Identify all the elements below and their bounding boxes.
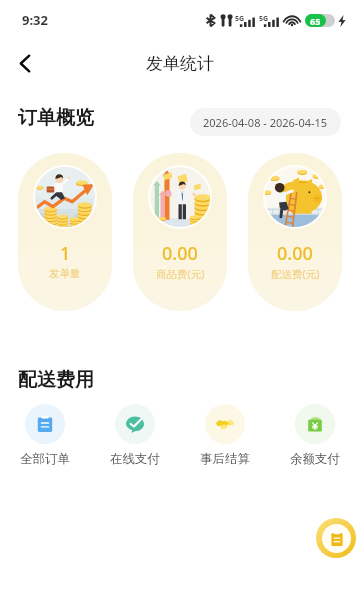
staticText: 余额支付 xyxy=(290,451,340,467)
staticText: 商品费(元) xyxy=(156,267,205,281)
button[interactable]: 余额支付 xyxy=(270,404,360,467)
button[interactable]: Back xyxy=(8,46,42,80)
button[interactable]: New order xyxy=(316,518,356,558)
button[interactable]: 2026-04-08 - 2026-04-15 xyxy=(190,108,341,136)
staticText: 0.00 xyxy=(162,241,198,266)
staticText: 订单概览 xyxy=(18,106,94,130)
staticText: 在线支付 xyxy=(110,451,160,467)
staticText: 1 xyxy=(60,241,71,266)
staticText: 0.00 xyxy=(277,241,313,266)
staticText: 5G xyxy=(259,14,269,24)
staticText: 配送费用 xyxy=(18,368,94,392)
staticText: 配送费(元) xyxy=(271,267,320,281)
staticText: 发单统计 xyxy=(146,53,214,74)
staticText: 5G xyxy=(235,14,245,24)
staticText: 2026-04-08 - 2026-04-15 xyxy=(203,115,328,130)
button[interactable]: 0.00 xyxy=(133,153,227,311)
staticText: 65 xyxy=(310,15,321,27)
button[interactable]: 1 xyxy=(18,153,112,311)
button[interactable]: 在线支付 xyxy=(90,404,180,467)
staticText: 全部订单 xyxy=(20,451,70,467)
staticText: 事后结算 xyxy=(200,451,250,467)
button[interactable]: 全部订单 xyxy=(0,404,90,467)
button[interactable]: 0.00 xyxy=(248,153,342,311)
staticText: 9:32 xyxy=(22,11,48,29)
staticText: 发单量 xyxy=(49,267,81,280)
button[interactable]: 事后结算 xyxy=(180,404,270,467)
